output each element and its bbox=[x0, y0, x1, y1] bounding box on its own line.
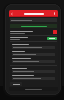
button[interactable] bbox=[10, 37, 57, 40]
button[interactable] bbox=[10, 30, 57, 34]
button[interactable] bbox=[10, 74, 57, 81]
button[interactable] bbox=[10, 57, 57, 64]
button[interactable] bbox=[10, 82, 22, 86]
button[interactable]: More options bbox=[52, 12, 57, 15]
button[interactable] bbox=[10, 43, 57, 50]
button[interactable] bbox=[10, 18, 57, 22]
button[interactable] bbox=[47, 37, 57, 40]
button[interactable] bbox=[10, 24, 57, 28]
button[interactable] bbox=[10, 50, 57, 57]
button[interactable]: Back bbox=[10, 12, 14, 16]
button[interactable] bbox=[10, 67, 57, 74]
